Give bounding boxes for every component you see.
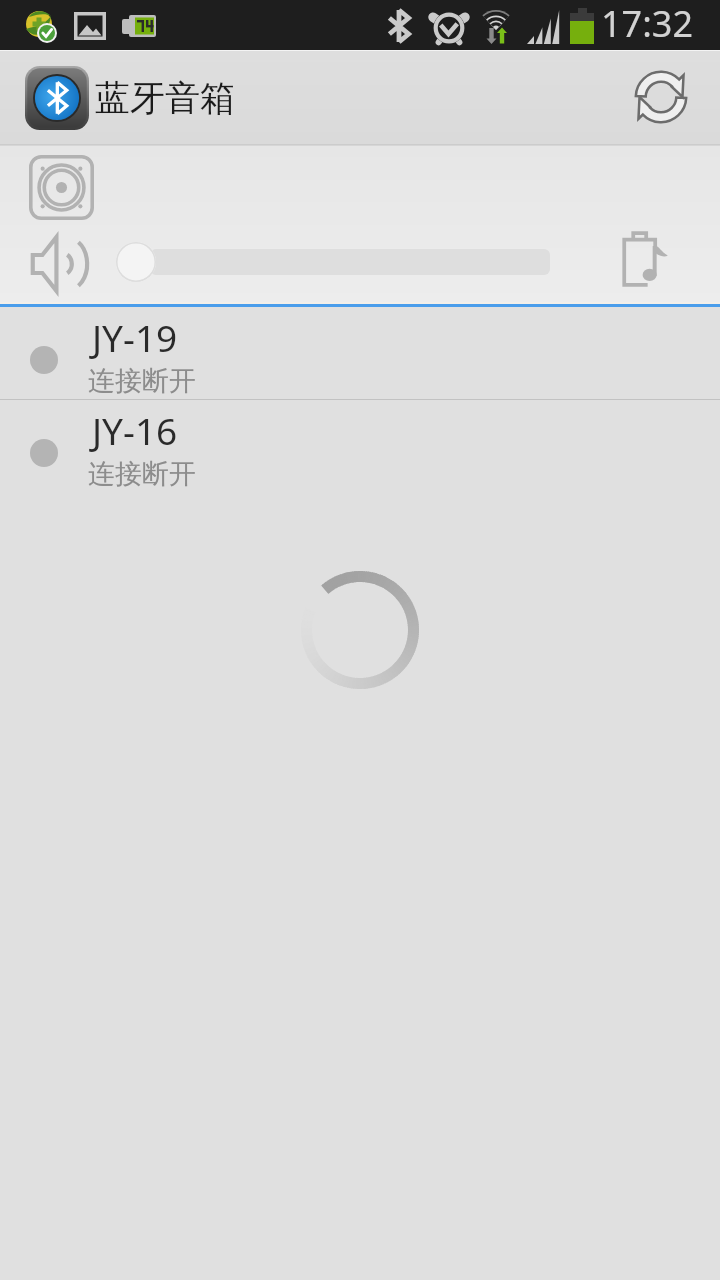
button[interactable]: Refresh <box>622 58 700 136</box>
button[interactable]: JY-16 <box>0 400 720 492</box>
button[interactable]: Volume <box>116 242 156 282</box>
button[interactable]: Music library <box>612 227 684 299</box>
staticText: JY-19 <box>92 312 178 362</box>
button[interactable]: Speaker <box>29 155 94 220</box>
staticText: 连接断开 <box>88 457 196 491</box>
staticText: 17:32 <box>601 0 694 48</box>
staticText: 蓝牙音箱 <box>95 76 235 120</box>
button[interactable]: JY-19 <box>0 307 720 399</box>
staticText: JY-16 <box>92 405 178 455</box>
staticText: 连接断开 <box>88 364 196 398</box>
